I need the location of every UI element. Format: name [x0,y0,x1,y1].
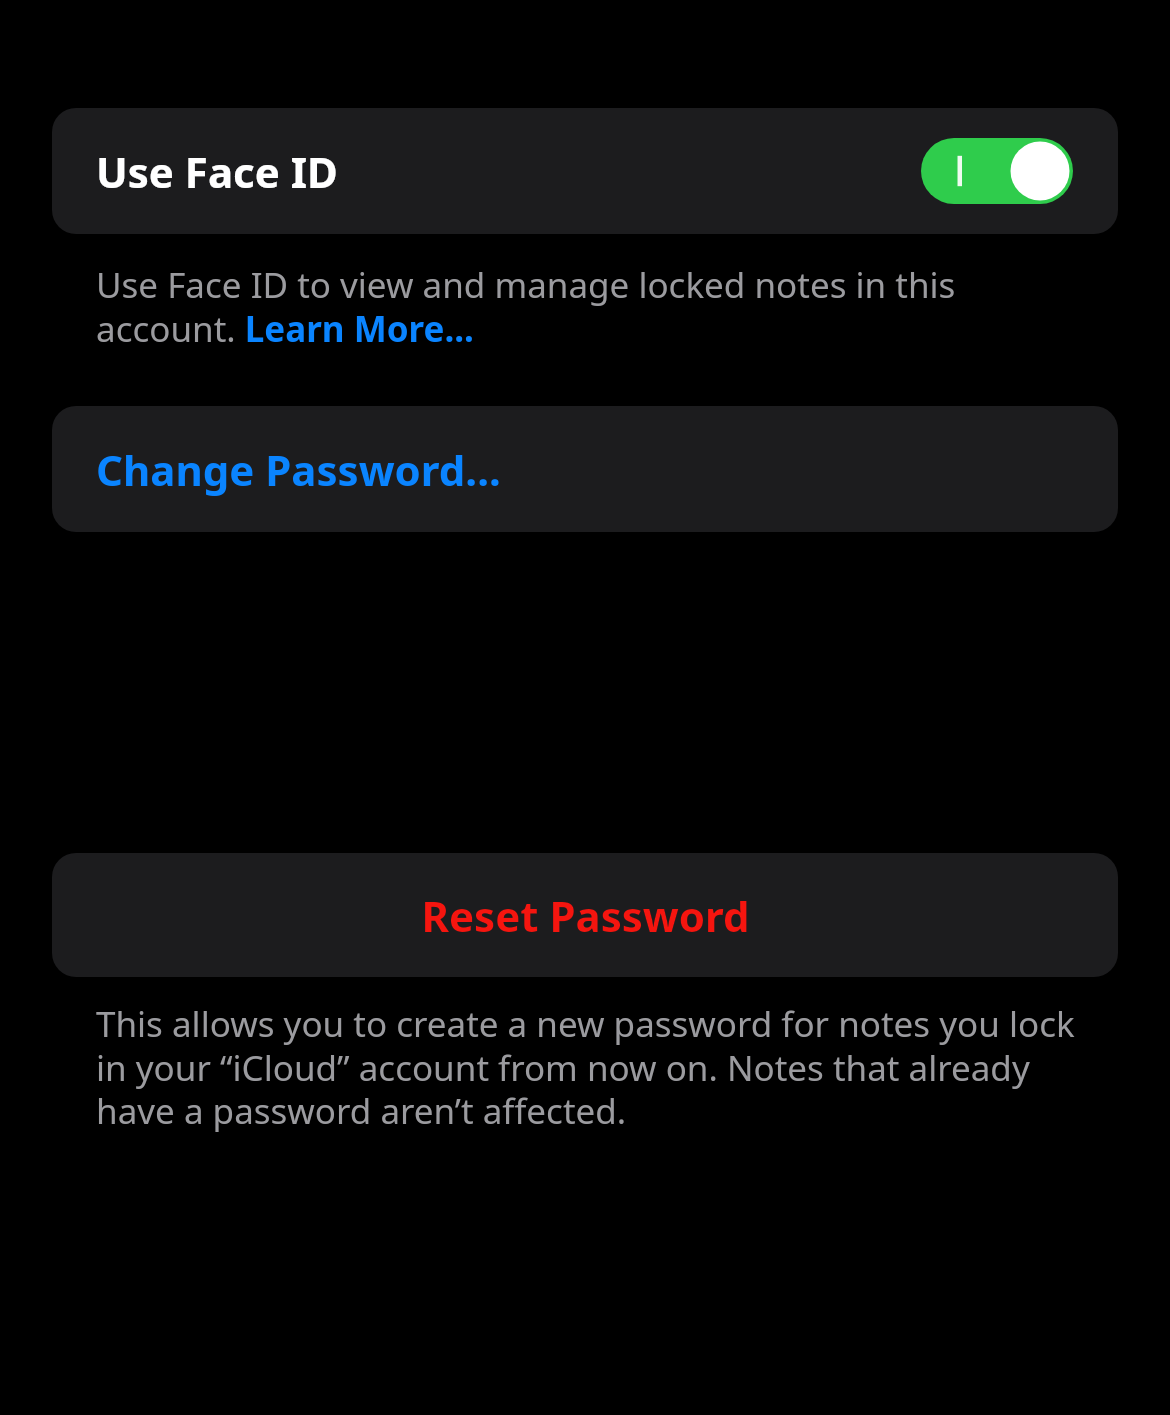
button[interactable]: Change Password... [52,406,1118,532]
staticText: Use Face ID [96,143,338,200]
staticText: Use Face ID to view and manage locked no… [96,261,1070,352]
staticText: Change Password... [96,441,501,498]
button[interactable]: Use Face ID toggle, on [921,138,1073,204]
staticText: Reset Password [421,887,750,944]
staticText: This allows you to create a new password… [96,1000,1080,1134]
button[interactable]: Use Face ID [52,108,1118,234]
button[interactable]: Reset Password [52,853,1118,977]
